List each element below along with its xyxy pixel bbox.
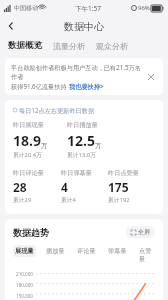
staticText: 数据概览 xyxy=(8,40,42,51)
staticText: 评论量 xyxy=(77,247,96,255)
button[interactable]: 观众分析 xyxy=(96,39,128,53)
staticText: 4 xyxy=(61,179,68,195)
button[interactable]: 流量分析 xyxy=(53,39,85,53)
staticText: 累计13.0万 xyxy=(67,151,96,159)
button[interactable]: 数据概览 xyxy=(8,38,42,53)
staticText: 点赞量 xyxy=(139,247,153,263)
staticText: 175 xyxy=(108,179,129,195)
staticText: 流量分析 xyxy=(53,41,85,51)
button[interactable]: 播放量 xyxy=(44,245,67,257)
staticText: 150,000 xyxy=(13,293,33,299)
staticText: 万 xyxy=(41,142,48,150)
staticText: 中国移动 xyxy=(14,4,38,12)
button[interactable]: 昨日点赞量 xyxy=(108,169,155,204)
staticText: 平台鼓励创作者积极与用户互动，已有21.5万名作者 xyxy=(11,63,144,81)
button[interactable]: 点赞量 xyxy=(137,245,155,265)
button[interactable]: 昨日评论量 xyxy=(13,169,61,204)
button[interactable]: 评论量 xyxy=(75,245,98,257)
staticText: 数据趋势 xyxy=(13,227,49,238)
button[interactable]: 关闭 xyxy=(144,70,157,83)
staticText: 每日12点左右更新昨日数据 xyxy=(19,106,95,114)
staticText: 昨日弹幕量 xyxy=(61,169,92,177)
staticText: 弹幕量 xyxy=(108,247,127,255)
staticText: 展现量 xyxy=(15,247,34,255)
staticText: 180,000 xyxy=(13,282,33,288)
staticText: 18.9 xyxy=(13,131,41,150)
staticText: 下午1:57 xyxy=(75,4,101,13)
staticText: 28 xyxy=(13,179,27,195)
staticText: 万 xyxy=(95,142,102,150)
staticText: 全屏 xyxy=(138,228,150,236)
staticText: 昨日评论量 xyxy=(13,169,44,177)
staticText: 210,000 xyxy=(13,271,33,277)
staticText: 播放量 xyxy=(46,247,65,255)
button[interactable]: 弹幕量 xyxy=(106,245,129,257)
staticText: 96% xyxy=(138,4,150,12)
button[interactable]: 全屏 xyxy=(126,226,155,238)
staticText: 昨日点赞量 xyxy=(108,169,139,177)
staticText: 昨日播放量 xyxy=(67,121,98,129)
button[interactable]: 昨日弹幕量 xyxy=(61,169,108,204)
staticText: 昨日展现量 xyxy=(13,121,44,129)
staticText: 累计29 xyxy=(13,196,32,204)
staticText: 获得91.6亿流量扶持 xyxy=(11,82,67,90)
button[interactable]: 昨日展现量 xyxy=(13,121,67,159)
staticText: 累计4 xyxy=(61,196,76,204)
staticText: 累计192 xyxy=(108,196,130,204)
staticText: 12.5 xyxy=(67,131,95,150)
button[interactable]: 昨日播放量 xyxy=(67,121,122,159)
button[interactable]: 我也要扶持> xyxy=(69,82,104,90)
staticText: 观众分析 xyxy=(96,41,128,51)
staticText: 数据中心 xyxy=(64,20,104,33)
button[interactable]: 展现量 xyxy=(13,245,36,257)
button[interactable]: 返回 xyxy=(0,16,22,36)
staticText: 累计20.4万 xyxy=(13,151,42,159)
staticText: 我也要扶持> xyxy=(69,82,104,90)
